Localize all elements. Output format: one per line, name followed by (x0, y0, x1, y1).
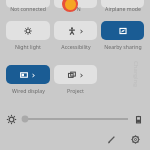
staticText: VPN (70, 5, 81, 12)
button[interactable]: Settings (128, 132, 142, 146)
button[interactable]: Brightness (7, 111, 143, 127)
button[interactable] (54, 0, 97, 8)
button[interactable]: Wired display (6, 65, 50, 94)
staticText: Accessibility (61, 43, 91, 50)
staticText: Project (67, 87, 84, 94)
button[interactable]: Edit tiles (104, 132, 118, 146)
button[interactable]: Night light (6, 21, 50, 50)
button[interactable]: Accessibility (54, 21, 97, 50)
button[interactable] (6, 0, 50, 8)
staticText: Night light (15, 43, 41, 50)
button[interactable] (101, 0, 144, 8)
staticText: Nearby sharing (104, 43, 142, 50)
staticText: Airplane mode (105, 5, 141, 12)
staticText: Wired display (12, 87, 45, 94)
staticText: Not connected (10, 5, 46, 12)
button[interactable]: Nearby sharing (101, 21, 144, 50)
button[interactable]: Project (54, 65, 97, 94)
